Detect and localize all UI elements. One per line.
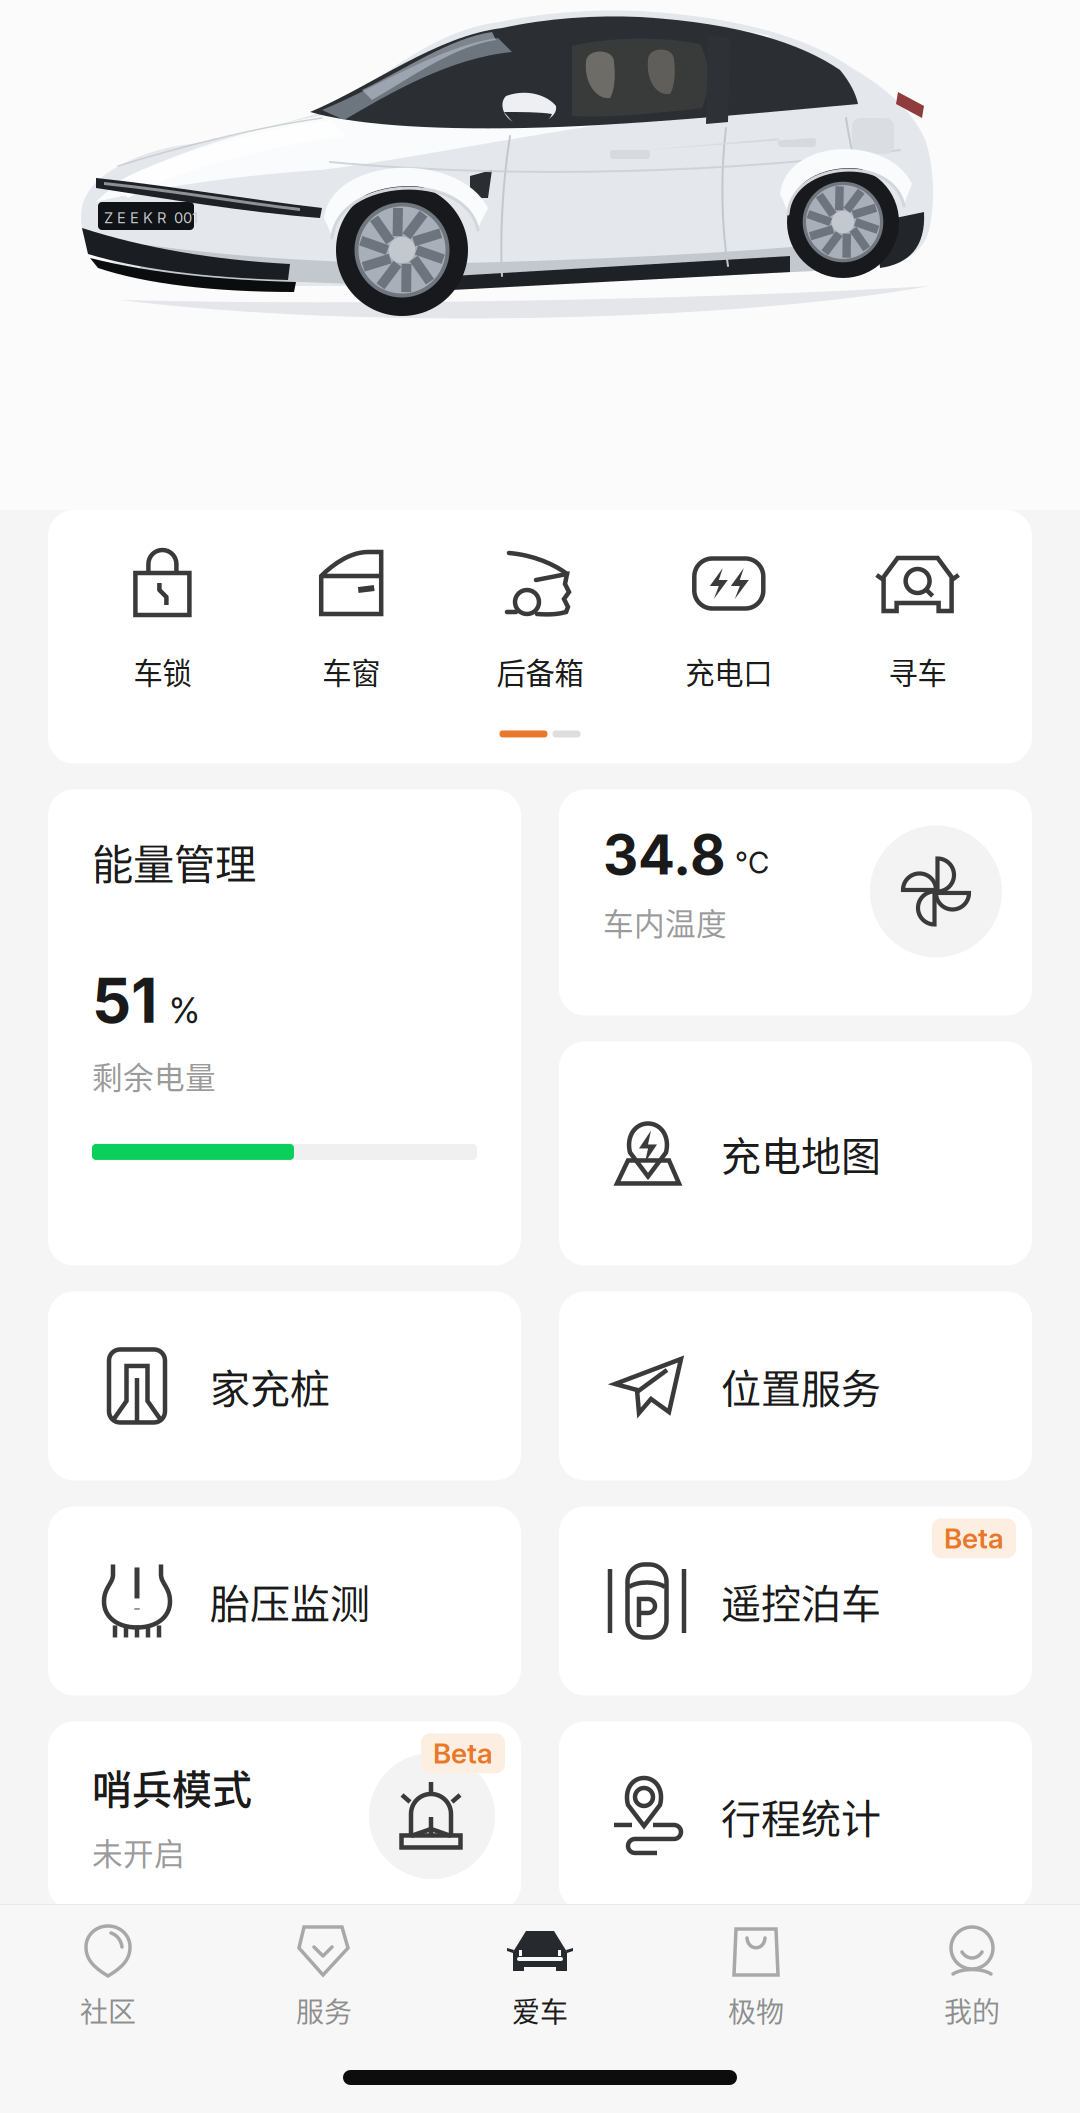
button[interactable]: 能量管理 bbox=[48, 789, 521, 1265]
staticText: 34.8 bbox=[603, 821, 726, 888]
staticText: 位置服务 bbox=[721, 1357, 881, 1415]
staticText: % bbox=[169, 990, 200, 1031]
staticText: 剩余电量 bbox=[92, 1053, 216, 1098]
staticText: 胎压监测 bbox=[210, 1572, 370, 1630]
button[interactable]: 充电口 bbox=[634, 544, 823, 692]
staticText: 社区 bbox=[80, 1990, 136, 2030]
staticText: Beta bbox=[944, 1521, 1004, 1555]
staticText: 哨兵模式 bbox=[92, 1758, 252, 1816]
button[interactable]: 胎压监测 bbox=[48, 1506, 521, 1695]
staticText: 极物 bbox=[728, 1990, 784, 2030]
staticText: 车内温度 bbox=[603, 900, 727, 944]
button[interactable]: 服务 bbox=[216, 1904, 432, 2042]
button[interactable]: 充电地图 bbox=[559, 1041, 1032, 1265]
button[interactable]: 我的 bbox=[864, 1904, 1080, 2042]
button[interactable]: 社区 bbox=[0, 1904, 216, 2042]
button[interactable]: 哨兵模式 bbox=[48, 1721, 521, 1910]
button[interactable]: 车锁 bbox=[68, 544, 257, 692]
staticText: 能量管理 bbox=[92, 831, 256, 891]
button[interactable]: 家充桩 bbox=[48, 1291, 521, 1480]
staticText: 行程统计 bbox=[721, 1787, 881, 1845]
staticText: 家充桩 bbox=[210, 1357, 330, 1415]
staticText: 爱车 bbox=[512, 1990, 568, 2030]
button[interactable]: 寻车 bbox=[823, 544, 1012, 692]
staticText: 我的 bbox=[944, 1990, 1000, 2030]
button[interactable]: 极物 bbox=[648, 1904, 864, 2042]
button[interactable]: 后备箱 bbox=[446, 544, 634, 692]
staticText: 充电地图 bbox=[721, 1124, 881, 1182]
button[interactable]: 遥控泊车 bbox=[559, 1506, 1032, 1695]
staticText: 未开启 bbox=[92, 1830, 185, 1874]
staticText: °C bbox=[735, 845, 769, 881]
staticText: 后备箱 bbox=[496, 650, 583, 692]
staticText: 遥控泊车 bbox=[721, 1572, 881, 1630]
staticText: 车窗 bbox=[322, 650, 380, 692]
button[interactable]: 爱车 bbox=[432, 1904, 648, 2042]
staticText: 寻车 bbox=[889, 650, 947, 692]
staticText: 服务 bbox=[296, 1990, 352, 2030]
staticText: Z E E K R 001 bbox=[104, 209, 198, 227]
staticText: 51 bbox=[92, 963, 157, 1037]
button[interactable]: 34.8 bbox=[559, 789, 1032, 1015]
staticText: 充电口 bbox=[685, 650, 772, 692]
staticText: Beta bbox=[433, 1736, 493, 1770]
button[interactable]: 车窗 bbox=[257, 544, 446, 692]
staticText: 车锁 bbox=[133, 650, 191, 692]
button[interactable]: 行程统计 bbox=[559, 1721, 1032, 1910]
button[interactable]: 位置服务 bbox=[559, 1291, 1032, 1480]
